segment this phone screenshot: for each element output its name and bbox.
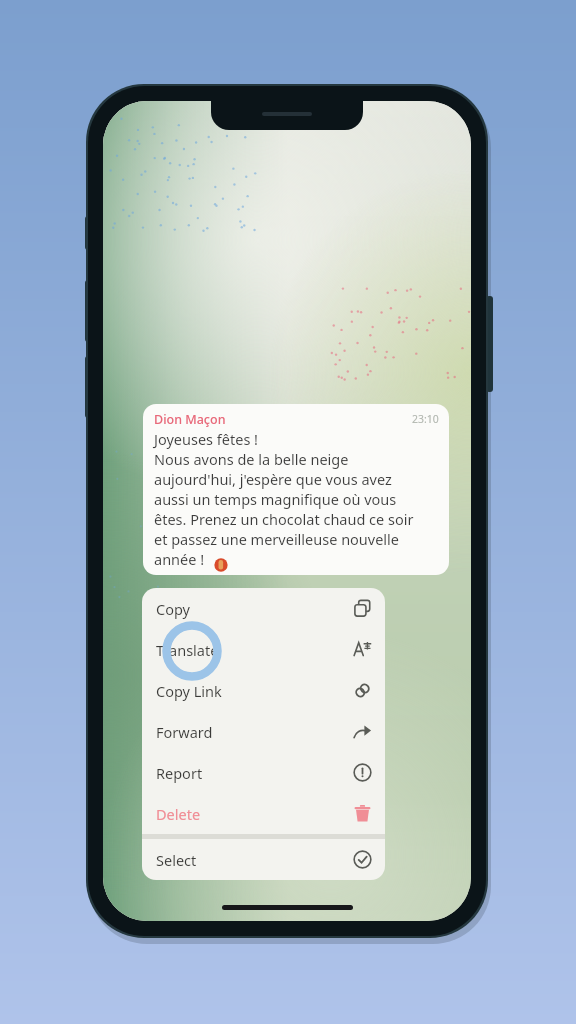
staticText: Select: [156, 850, 197, 870]
staticText: 23:10: [412, 412, 439, 426]
staticText: Nous avons de la belle neige aujourd'hui…: [154, 449, 414, 569]
staticText: Report: [156, 763, 203, 783]
staticText: Joyeuses fêtes !: [154, 429, 259, 449]
button[interactable]: Delete: [142, 793, 385, 834]
button[interactable]: Report: [142, 752, 385, 793]
staticText: Forward: [156, 722, 213, 742]
button[interactable]: Forward: [142, 711, 385, 752]
button[interactable]: Translate: [142, 629, 385, 670]
button[interactable]: Dion Maçon: [143, 404, 449, 575]
staticText: Dion Maçon: [154, 411, 226, 428]
staticText: Copy Link: [156, 681, 222, 701]
button[interactable]: Copy Link: [142, 670, 385, 711]
staticText: Translate: [156, 640, 219, 660]
staticText: Copy: [156, 599, 190, 619]
staticText: Delete: [156, 804, 201, 824]
button[interactable]: Select: [142, 839, 385, 880]
button[interactable]: Copy: [142, 588, 385, 629]
